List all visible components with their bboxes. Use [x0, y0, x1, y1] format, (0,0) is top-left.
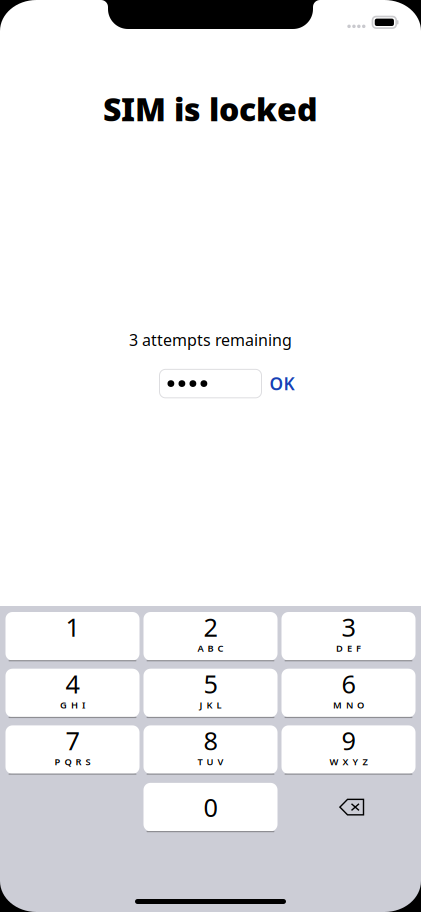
button[interactable]: Delete [281, 783, 415, 831]
staticText: 8 [203, 724, 217, 757]
staticText: 3 attempts remaining [129, 329, 292, 350]
button[interactable]: 3 [281, 612, 415, 660]
staticText: 1 [65, 610, 79, 644]
staticText: 7 [65, 724, 79, 757]
button[interactable]: 7 [5, 725, 139, 774]
button[interactable]: 1 [5, 612, 139, 660]
button[interactable]: 5 [143, 669, 277, 717]
button[interactable]: OK [269, 372, 325, 395]
staticText: 6 [341, 667, 355, 700]
staticText: M N O [333, 699, 364, 711]
staticText: W X Y Z [329, 755, 367, 768]
staticText: OK [269, 372, 294, 395]
button[interactable]: 8 [143, 725, 277, 774]
staticText: P Q R S [54, 755, 90, 768]
staticText: A B C [197, 642, 223, 654]
staticText: 3 [341, 610, 355, 644]
staticText: 2 [203, 610, 217, 644]
button[interactable]: 4 [5, 669, 139, 717]
staticText: 5 [203, 667, 217, 700]
staticText: 4 [65, 667, 79, 700]
staticText: 0 [203, 790, 217, 824]
button[interactable]: 6 [281, 669, 415, 717]
staticText: T U V [197, 755, 223, 768]
staticText: SIM is locked [103, 88, 318, 130]
staticText: D E F [336, 642, 361, 654]
button[interactable]: 9 [281, 725, 415, 774]
staticText: J K L [199, 699, 221, 711]
staticText: G H I [60, 699, 85, 711]
staticText: 9 [341, 724, 355, 757]
button[interactable]: 0 [143, 783, 277, 831]
button[interactable]: 2 [143, 612, 277, 660]
